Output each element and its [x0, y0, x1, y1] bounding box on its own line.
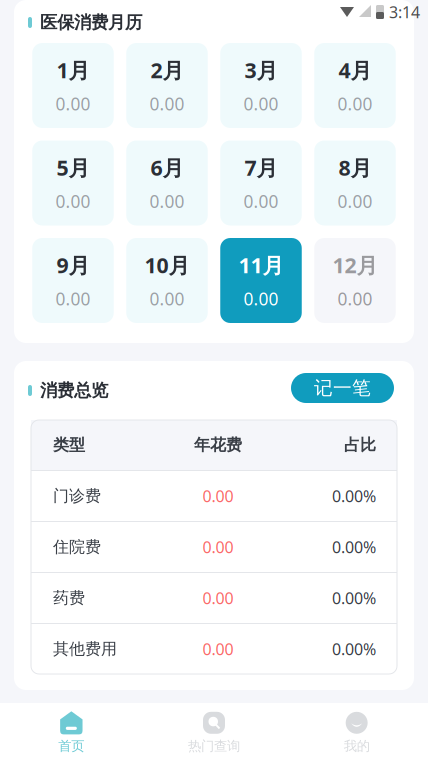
staticText: 其他费用 — [53, 639, 117, 659]
staticText: 年花费 — [194, 435, 242, 455]
button[interactable]: 10月 — [126, 238, 208, 323]
staticText: 4月 — [338, 56, 371, 84]
staticText: 占比 — [344, 435, 376, 455]
staticText: 3月 — [244, 56, 277, 84]
staticText: 9月 — [56, 251, 89, 279]
staticText: 2月 — [150, 56, 183, 84]
staticText: 我的 — [344, 738, 370, 754]
staticText: 0.00 — [202, 638, 233, 660]
button[interactable]: 11月 — [220, 238, 302, 323]
button[interactable]: 7月 — [220, 140, 302, 225]
staticText: 0.00 — [202, 587, 233, 609]
button[interactable]: 首页 — [0, 711, 143, 754]
staticText: 0.00 — [243, 92, 278, 115]
button[interactable]: 我的 — [285, 711, 428, 754]
staticText: 8月 — [338, 153, 371, 182]
staticText: 0.00 — [337, 92, 372, 115]
staticText: 6月 — [150, 153, 183, 182]
staticText: 0.00% — [332, 536, 376, 558]
staticText: 12月 — [332, 251, 377, 279]
staticText: 门诊费 — [53, 486, 101, 506]
button[interactable]: 6月 — [126, 140, 208, 225]
staticText: 0.00% — [332, 638, 376, 660]
staticText: 0.00 — [55, 190, 90, 213]
button[interactable]: 9月 — [32, 238, 114, 323]
staticText: 类型 — [53, 435, 85, 455]
staticText: 0.00 — [55, 92, 90, 115]
button[interactable]: 4月 — [314, 43, 396, 128]
staticText: 0.00 — [243, 287, 278, 310]
staticText: 3:14 — [389, 1, 420, 23]
staticText: 0.00 — [55, 287, 90, 310]
staticText: 首页 — [58, 738, 84, 754]
staticText: 0.00% — [332, 587, 376, 609]
staticText: 药费 — [53, 588, 85, 608]
staticText: 消费总览 — [40, 380, 108, 401]
staticText: 5月 — [56, 153, 89, 182]
staticText: 0.00 — [202, 536, 233, 558]
staticText: 记一笔 — [314, 376, 371, 399]
staticText: 7月 — [244, 153, 277, 182]
staticText: 0.00 — [149, 92, 184, 115]
button[interactable]: 8月 — [314, 140, 396, 225]
staticText: 0.00 — [149, 287, 184, 310]
button[interactable]: 5月 — [32, 140, 114, 225]
button[interactable]: 3月 — [220, 43, 302, 128]
staticText: 住院费 — [53, 537, 101, 557]
staticText: 0.00 — [337, 190, 372, 213]
staticText: 热门查询 — [188, 738, 240, 754]
staticText: 医保消费月历 — [40, 12, 142, 33]
button[interactable]: 记一笔 — [291, 373, 394, 408]
staticText: 0.00 — [337, 287, 372, 310]
staticText: 10月 — [144, 251, 189, 279]
staticText: 11月 — [238, 251, 283, 279]
button[interactable]: 热门查询 — [143, 711, 285, 754]
staticText: 0.00 — [202, 485, 233, 507]
button[interactable]: 1月 — [32, 43, 114, 128]
button[interactable]: 12月 — [314, 238, 396, 323]
staticText: 1月 — [56, 56, 89, 84]
staticText: 0.00 — [149, 190, 184, 213]
staticText: 0.00% — [332, 485, 376, 507]
staticText: 0.00 — [243, 190, 278, 213]
button[interactable]: 2月 — [126, 43, 208, 128]
